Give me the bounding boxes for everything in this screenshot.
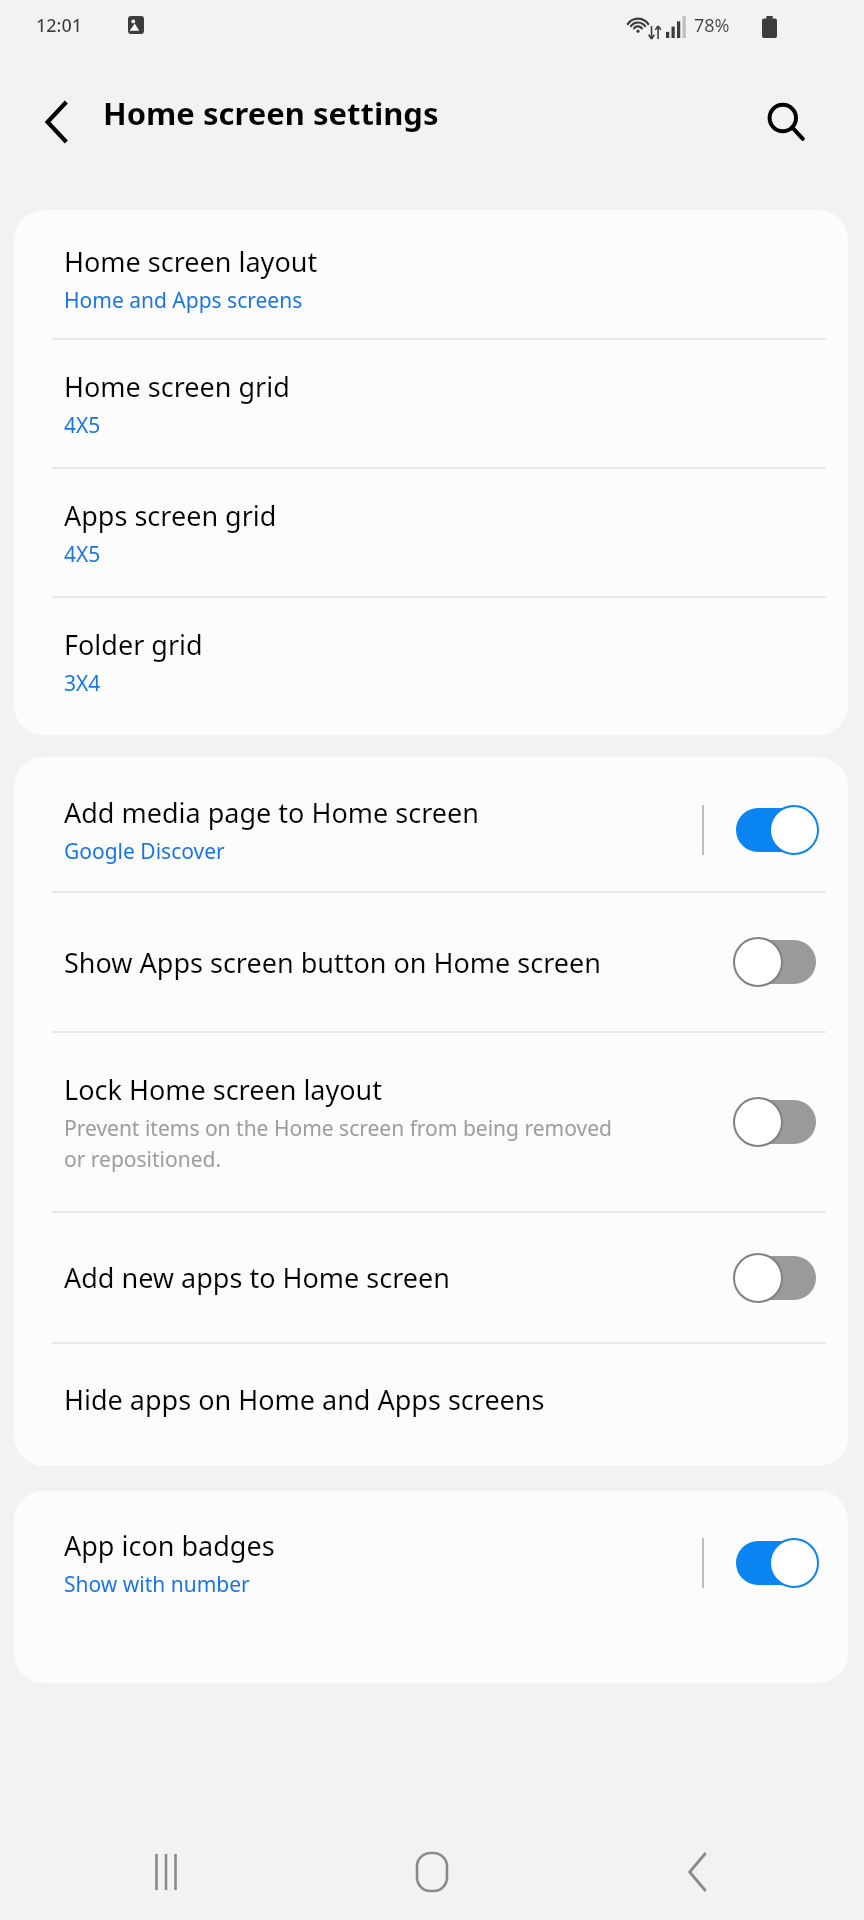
button[interactable]: Search [752,88,820,156]
button[interactable]: Lock Home screen layout [14,1033,848,1211]
staticText: Home and Apps screens [64,286,303,315]
staticText: 4X5 [64,411,101,440]
button[interactable]: Back [24,88,92,156]
button[interactable]: Add new apps to Home screen [14,1213,848,1342]
button[interactable]: Show Apps screen button on Home screen [14,893,848,1031]
staticText: Prevent items on the Home screen from be… [64,1114,614,1173]
staticText: Show Apps screen button on Home screen [64,944,601,981]
staticText: Apps screen grid [64,497,277,534]
staticText: Google Discover [64,837,225,866]
staticText: Home screen grid [64,368,290,405]
button[interactable]: Home screen grid [14,340,848,467]
staticText: Home screen layout [64,243,318,280]
staticText: Home screen settings [103,92,439,134]
staticText: Hide apps on Home and Apps screens [64,1381,545,1418]
staticText: App icon badges [64,1527,275,1564]
staticText: 78% [694,13,730,38]
button[interactable]: Back [662,1836,734,1908]
staticText: 3X4 [64,669,101,698]
staticText: Show with number [64,1570,250,1599]
button[interactable]: Recents [130,1836,202,1908]
button[interactable]: Folder grid [14,598,848,725]
button[interactable]: Apps screen grid [14,469,848,596]
staticText: 4X5 [64,540,101,569]
button[interactable]: Home screen layout [14,220,848,338]
button[interactable]: Hide apps on Home and Apps screens [14,1344,848,1454]
staticText: Lock Home screen layout [64,1071,383,1108]
button[interactable]: App icon badges [14,1503,848,1623]
button[interactable]: Add media page to Home screen [14,769,848,891]
staticText: Add new apps to Home screen [64,1259,450,1296]
staticText: Folder grid [64,626,203,663]
staticText: 12:01 [36,13,83,38]
button[interactable]: Home [396,1836,468,1908]
staticText: Add media page to Home screen [64,794,479,831]
